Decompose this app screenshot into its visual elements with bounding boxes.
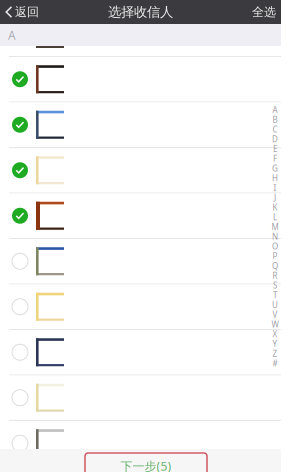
button[interactable]: 下一步(5) [85, 453, 207, 472]
button[interactable] [0, 57, 281, 102]
staticText: C [272, 124, 277, 135]
button[interactable]: 返回 [0, 0, 47, 24]
button[interactable] [0, 148, 281, 193]
staticText: 下一步(5) [120, 458, 171, 472]
staticText: P [272, 251, 277, 261]
button[interactable] [0, 330, 281, 375]
staticText: V [272, 309, 277, 320]
staticText: # [272, 358, 277, 369]
button[interactable] [0, 102, 281, 148]
staticText: T [273, 290, 277, 300]
staticText: D [272, 134, 278, 144]
button[interactable] [0, 193, 281, 239]
staticText: X [272, 329, 277, 339]
staticText: Y [272, 339, 277, 349]
staticText: 选择收信人 [108, 4, 173, 20]
staticText: K [272, 202, 277, 213]
staticText: N [272, 231, 278, 242]
button[interactable]: 全选 [252, 0, 281, 24]
button[interactable] [0, 284, 281, 330]
staticText: U [272, 300, 278, 310]
button[interactable] [0, 375, 281, 421]
staticText: F [273, 153, 277, 164]
staticText: R [272, 270, 277, 281]
staticText: S [273, 280, 277, 291]
staticText: H [272, 173, 278, 183]
staticText: M [271, 222, 278, 232]
staticText: E [273, 144, 277, 154]
staticText: B [272, 114, 277, 125]
staticText: 返回 [15, 5, 39, 19]
staticText: 全选 [252, 5, 276, 19]
staticText: O [272, 241, 278, 252]
staticText: L [273, 212, 277, 222]
staticText: I [273, 183, 276, 193]
staticText: A [8, 27, 16, 43]
staticText: Q [272, 261, 278, 271]
staticText: J [274, 192, 276, 203]
button[interactable] [0, 421, 281, 466]
staticText: W [271, 319, 278, 330]
button[interactable] [0, 239, 281, 284]
staticText: G [272, 163, 278, 174]
staticText: Z [272, 348, 277, 359]
staticText: A [272, 105, 277, 115]
